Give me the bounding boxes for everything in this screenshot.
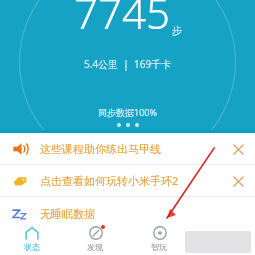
staticText: 发现 [87, 242, 103, 252]
button[interactable]: 这些课程助你练出马甲线 [0, 133, 255, 164]
staticText: 7745 [74, 0, 170, 41]
staticText: 状态 [24, 242, 40, 252]
staticText: 无睡眠数据 [40, 207, 95, 221]
staticText: 智玩 [151, 242, 167, 252]
staticText: 这些课程助你练出马甲线 [40, 142, 225, 156]
other: 状态 [25, 226, 39, 240]
button[interactable]: 无睡眠数据 [0, 197, 255, 231]
other: 智玩 [153, 226, 167, 240]
other: 发现 [89, 226, 103, 240]
button[interactable]: Dismiss [225, 168, 251, 194]
button[interactable]: Dismiss [225, 136, 251, 162]
button[interactable]: 智玩 [127, 221, 191, 255]
button[interactable]: 状态 [0, 221, 63, 255]
button[interactable]: 点击查看如何玩转小米手环2 [0, 165, 255, 196]
staticText: 5.4公里 | 169千卡 [84, 57, 172, 71]
staticText: 步 [172, 24, 182, 37]
staticText: 点击查看如何玩转小米手环2 [40, 173, 225, 188]
button[interactable]: 发现 [63, 221, 127, 255]
staticText: 同步数据100% [98, 106, 157, 118]
